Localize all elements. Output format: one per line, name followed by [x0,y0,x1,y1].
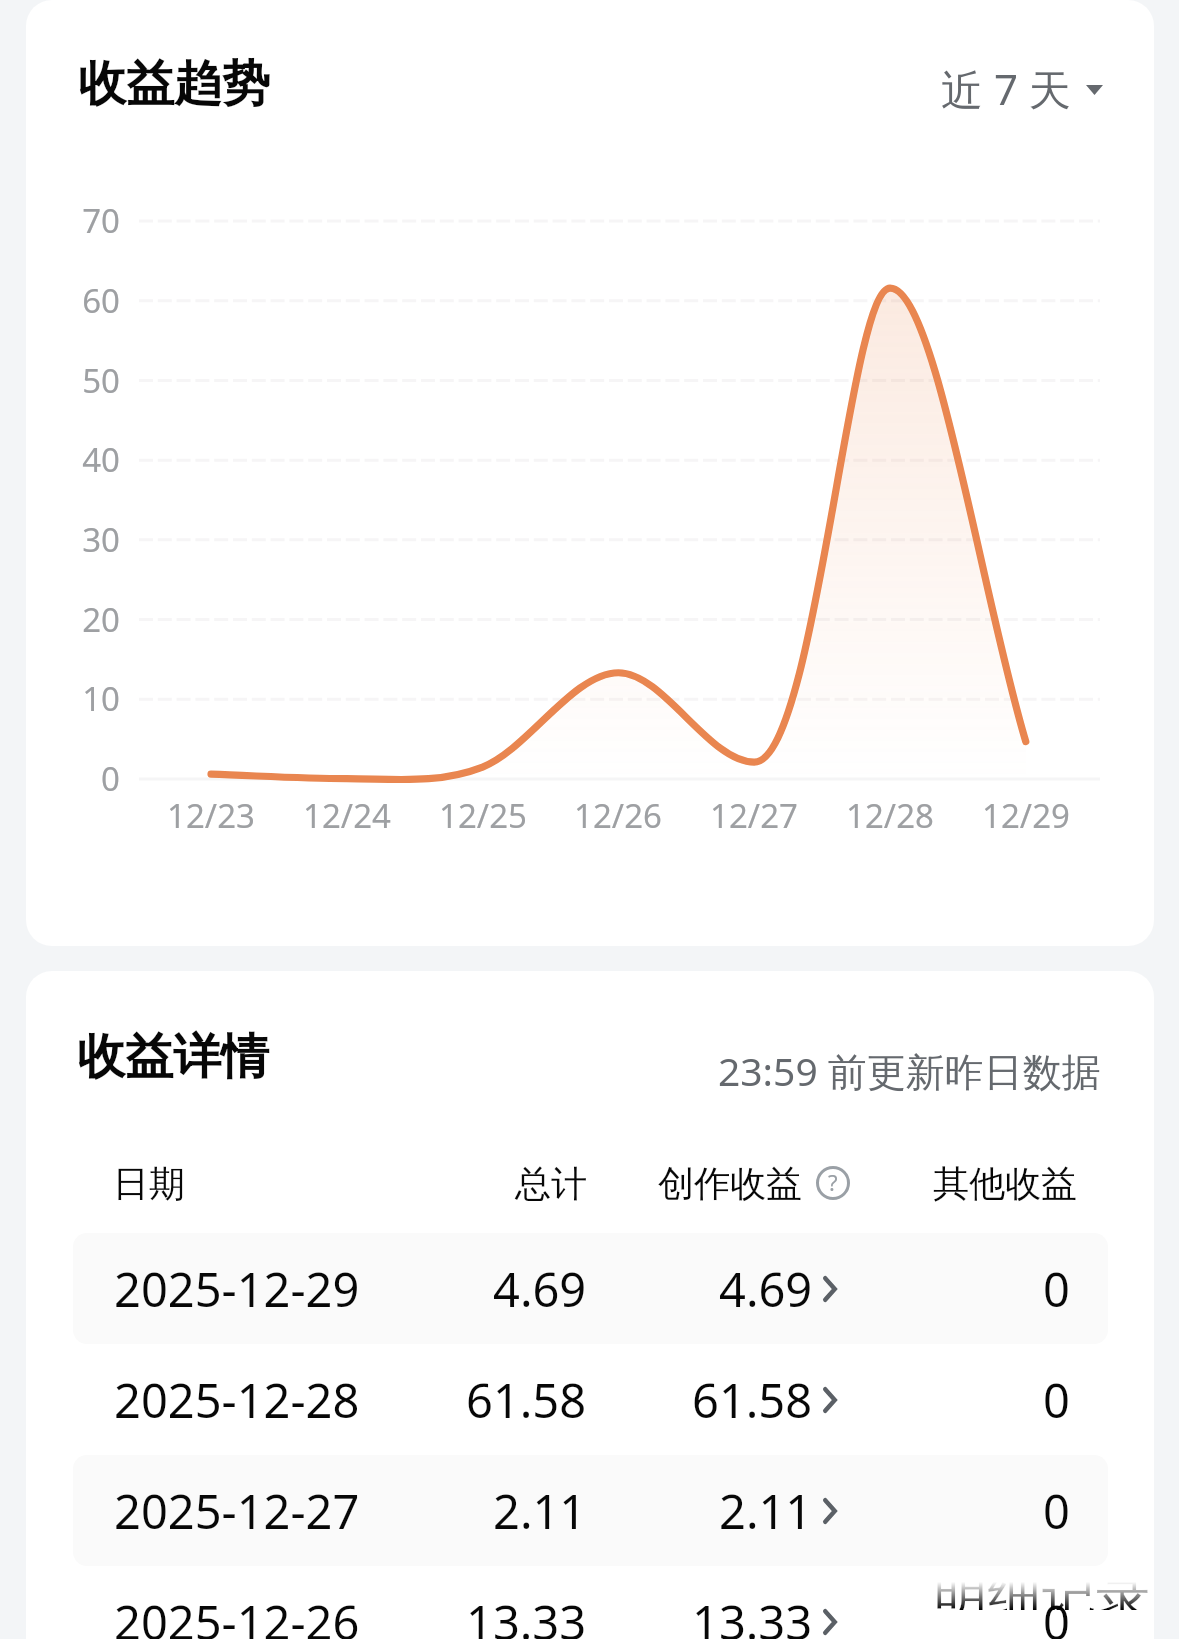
staticText: 收益趋势 [78,54,270,114]
other: 查看明细 [823,1387,837,1413]
staticText: 12/24 [277,793,417,838]
staticText: 61.58 [692,1368,813,1432]
staticText: 总计 [515,1161,587,1206]
staticText: 日期 [113,1161,185,1206]
staticText: 12/28 [820,793,960,838]
staticText: 10 [26,676,120,721]
staticText: ? [828,1167,838,1197]
staticText: 0 [1043,1479,1070,1543]
staticText: 收益详情 [77,1027,269,1087]
other: 查看明细 [823,1276,837,1302]
staticText: 13.33 [692,1590,813,1639]
button[interactable]: 2025-12-27 [26,1455,1154,1566]
staticText: 0 [1043,1368,1070,1432]
staticText: 12/27 [684,793,824,838]
staticText: 其他收益 [933,1161,1077,1206]
staticText: 12/25 [413,793,553,838]
staticText: 明细记录 [934,1563,1150,1610]
staticText: 20 [26,597,120,642]
staticText: 0 [26,756,120,801]
button[interactable]: 2025-12-26 [26,1566,1154,1639]
staticText: 40 [26,437,120,482]
staticText: 4.69 [493,1257,587,1321]
staticText: 近 7 天 [941,60,1071,117]
staticText: 12/29 [956,793,1096,838]
other: 选择时间范围 [1086,85,1103,95]
other: 查看明细 [823,1498,837,1524]
staticText: 创作收益 [658,1161,802,1206]
staticText: 70 [26,198,120,243]
staticText: 12/23 [141,793,281,838]
other: 查看明细 [823,1609,837,1635]
staticText: 2025-12-26 [114,1590,360,1639]
staticText: 2.11 [719,1479,813,1543]
staticText: 30 [26,517,120,562]
staticText: 0 [1043,1257,1070,1321]
button[interactable]: 近 7 天 [900,54,1103,122]
staticText: 61.58 [466,1368,587,1432]
button[interactable]: 2025-12-28 [26,1344,1154,1455]
staticText: 12/26 [548,793,688,838]
staticText: 2025-12-28 [114,1368,360,1432]
staticText: 2.11 [493,1479,587,1543]
button[interactable]: 创作收益说明 [816,1166,850,1200]
staticText: 4.69 [719,1257,813,1321]
staticText: 50 [26,358,120,403]
staticText: 23:59 前更新昨日数据 [718,1044,1101,1097]
staticText: 60 [26,278,120,323]
staticText: 0 [1043,1590,1070,1639]
staticText: 13.33 [466,1590,587,1639]
staticText: 2025-12-29 [114,1257,360,1321]
button[interactable]: 2025-12-29 [26,1233,1154,1344]
staticText: 2025-12-27 [114,1479,360,1543]
